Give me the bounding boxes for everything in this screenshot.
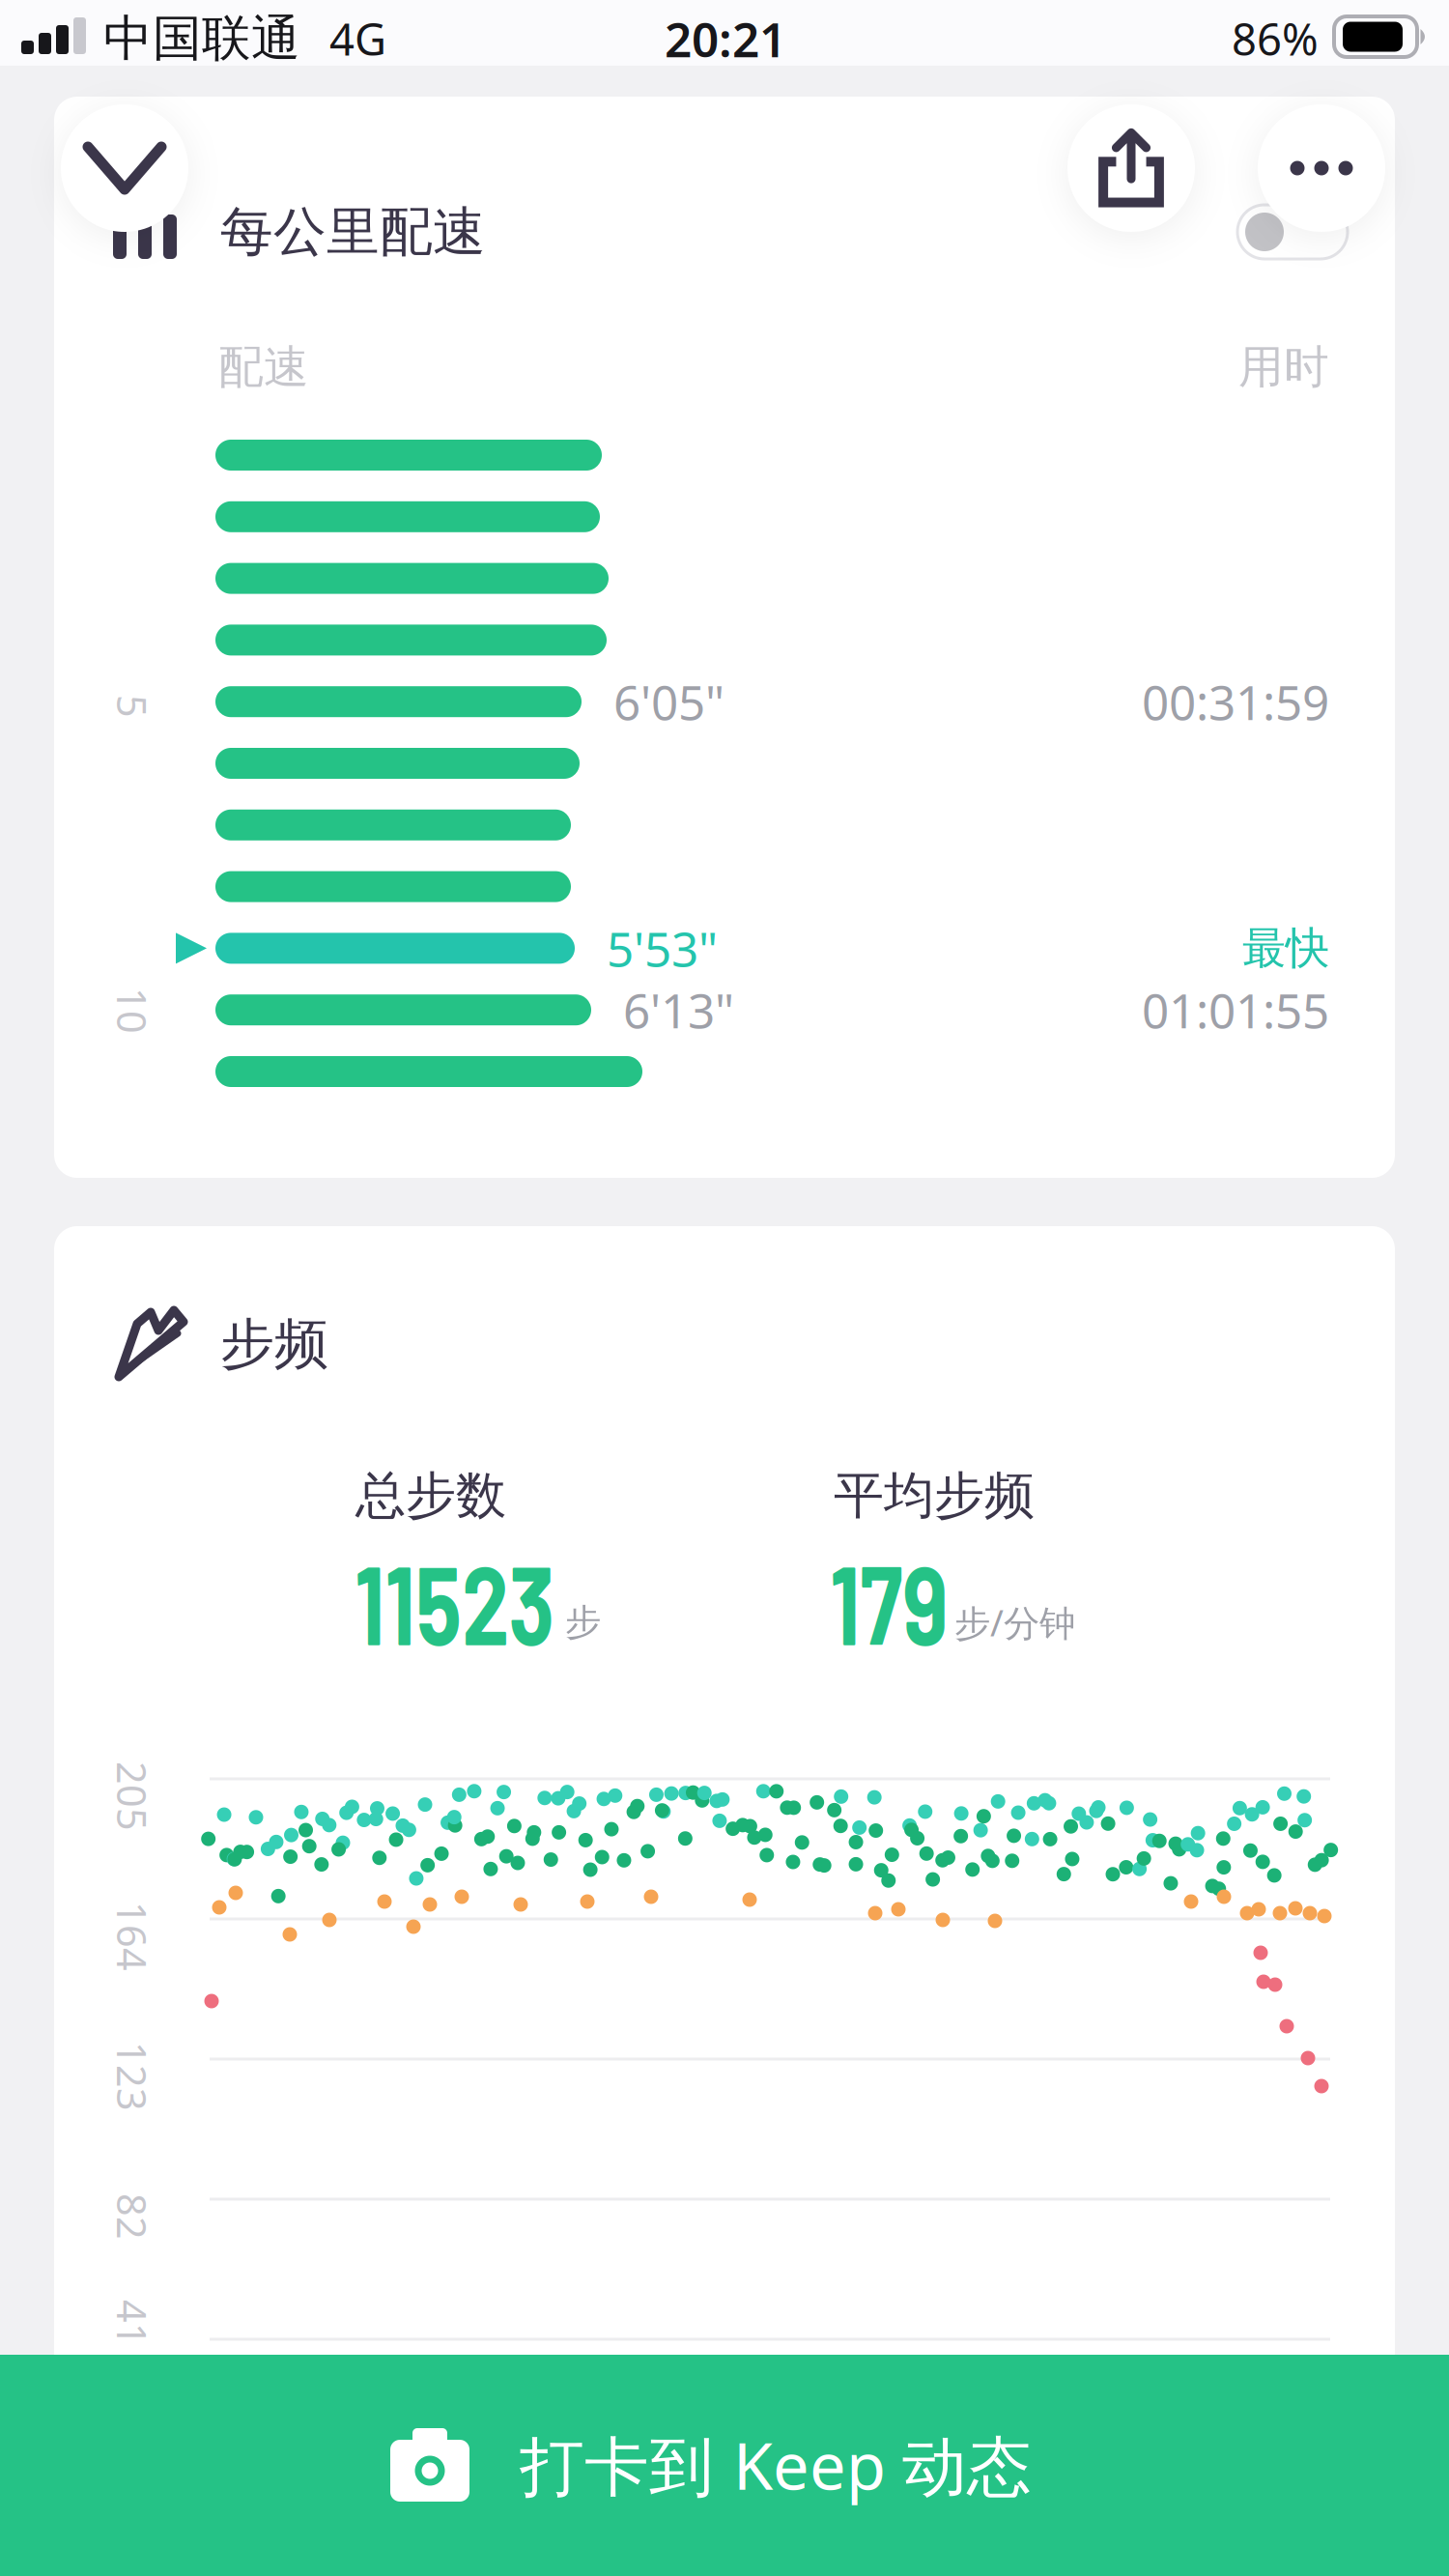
staticText: 10 — [109, 984, 156, 1037]
staticText: 最快 — [1242, 921, 1329, 975]
staticText: 打卡到 Keep 动态 — [520, 2422, 1032, 2508]
staticText: 平均步频 — [834, 1465, 1035, 1527]
staticText: 步 — [565, 1600, 601, 1645]
staticText: 41 — [109, 2296, 156, 2349]
staticText: 01:01:55 — [1142, 978, 1329, 1042]
staticText: 用时 — [1238, 339, 1329, 395]
staticText: 中国联通 — [103, 9, 300, 69]
staticText: 5'53" — [607, 917, 718, 980]
button[interactable] — [1067, 104, 1195, 232]
staticText: 11523 — [355, 1535, 614, 1668]
staticText: 每公里配速 — [220, 199, 486, 264]
staticText: 00:31:59 — [1142, 670, 1329, 733]
staticText: 86% — [1232, 10, 1319, 68]
staticText: 123 — [98, 2050, 167, 2103]
staticText: 20:21 — [665, 7, 786, 70]
button[interactable] — [1258, 104, 1385, 232]
staticText: 配速 — [218, 339, 309, 395]
button[interactable]: 打卡到 Keep 动态 — [0, 2355, 1449, 2576]
staticText: 4G — [329, 10, 386, 68]
staticText: 步频 — [220, 1311, 328, 1377]
staticText: 164 — [98, 1910, 167, 1963]
button[interactable] — [1237, 205, 1348, 259]
staticText: 205 — [98, 1770, 167, 1823]
staticText: 6'05" — [613, 670, 724, 733]
staticText: 6'13" — [623, 978, 734, 1042]
staticText: 总步数 — [355, 1465, 506, 1527]
staticText: 82 — [109, 2190, 156, 2243]
staticText: 5 — [121, 680, 144, 733]
button[interactable] — [61, 104, 188, 232]
staticText: 179 — [830, 1535, 983, 1668]
staticText: 步/分钟 — [954, 1598, 1075, 1646]
